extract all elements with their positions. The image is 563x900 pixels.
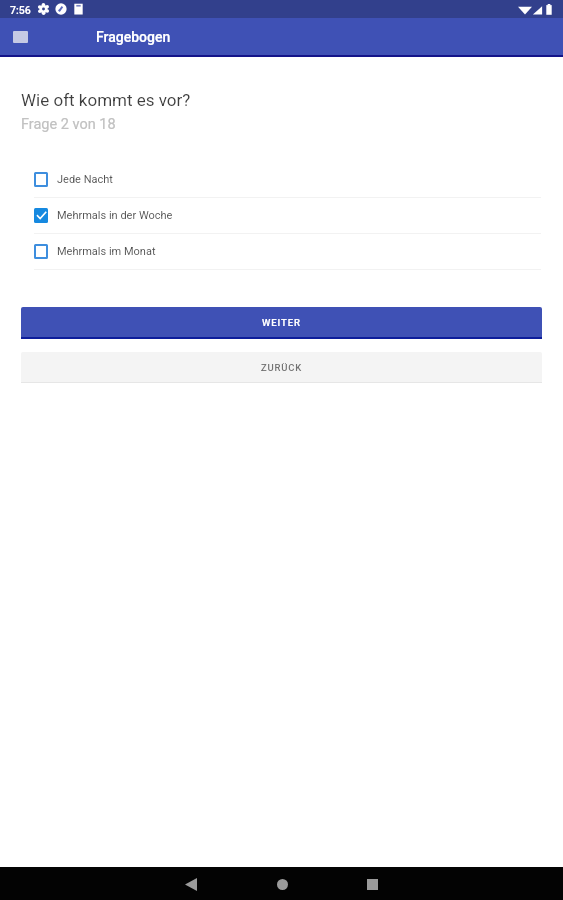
button[interactable]: WEITER <box>21 307 542 339</box>
button[interactable]: Mehrmals im Monat <box>0 234 563 269</box>
staticText: Wie oft kommt es vor? <box>21 90 191 110</box>
staticText: Mehrmals im Monat <box>57 245 156 258</box>
button[interactable]: ZURÜCK <box>21 352 542 383</box>
staticText: Frage 2 von 18 <box>21 116 116 133</box>
staticText: WEITER <box>262 317 301 328</box>
staticText: Mehrmals in der Woche <box>57 209 173 222</box>
staticText: ZURÜCK <box>261 362 302 373</box>
staticText: Jede Nacht <box>57 173 113 186</box>
button[interactable]: Recents <box>358 870 386 898</box>
staticText: 7:56 <box>10 4 31 16</box>
button[interactable]: Jede Nacht <box>0 162 563 197</box>
button[interactable]: Home <box>268 870 296 898</box>
button[interactable]: Back <box>177 870 205 898</box>
button[interactable]: Menu <box>6 23 34 51</box>
button[interactable]: Mehrmals in der Woche <box>0 198 563 233</box>
staticText: Fragebogen <box>96 29 171 45</box>
